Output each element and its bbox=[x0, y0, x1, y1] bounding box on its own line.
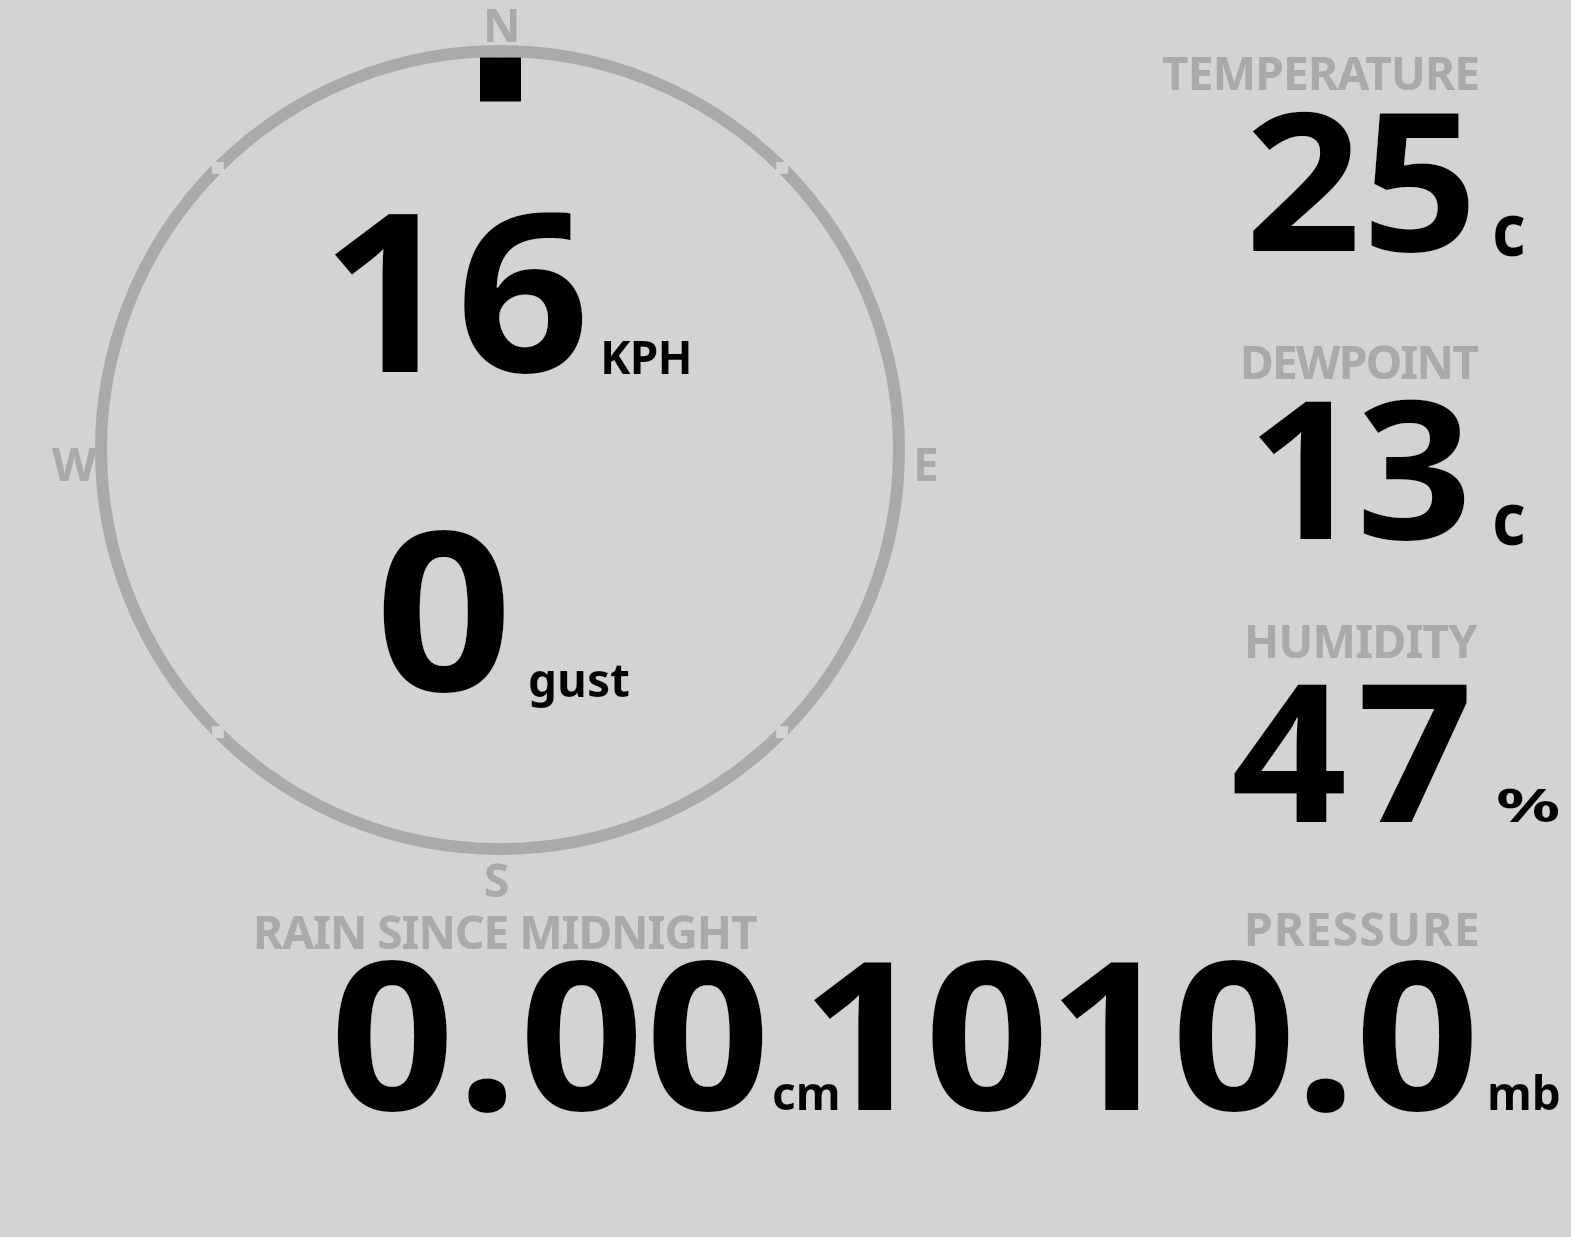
staticText: PRESSURE bbox=[1244, 897, 1482, 960]
staticText: mb bbox=[1487, 1061, 1561, 1124]
staticText: 0 bbox=[375, 455, 513, 756]
staticText: gust bbox=[528, 648, 631, 711]
staticText: KPH bbox=[600, 325, 692, 388]
staticText: TEMPERATURE bbox=[1162, 41, 1480, 104]
staticText: % bbox=[1496, 773, 1561, 836]
staticText: RAIN SINCE MIDNIGHT bbox=[253, 900, 757, 963]
staticText: 25 bbox=[1245, 46, 1478, 308]
staticText: W bbox=[52, 432, 97, 495]
staticText: c bbox=[1492, 466, 1526, 567]
staticText: 1010.0 bbox=[801, 890, 1479, 1171]
staticText: 47 bbox=[1231, 617, 1483, 879]
staticText: N bbox=[483, 0, 521, 56]
staticText: c bbox=[1492, 177, 1526, 278]
staticText: HUMIDITY bbox=[1244, 609, 1477, 672]
staticText: DEWPOINT bbox=[1240, 330, 1478, 393]
button[interactable]: Wind direction compass bbox=[67, 17, 933, 883]
staticText: cm bbox=[772, 1061, 841, 1124]
staticText: 16 bbox=[321, 136, 591, 437]
staticText: E bbox=[913, 432, 939, 495]
staticText: 13 bbox=[1247, 334, 1465, 596]
staticText: S bbox=[484, 848, 510, 911]
staticText: 0.00 bbox=[330, 890, 772, 1171]
